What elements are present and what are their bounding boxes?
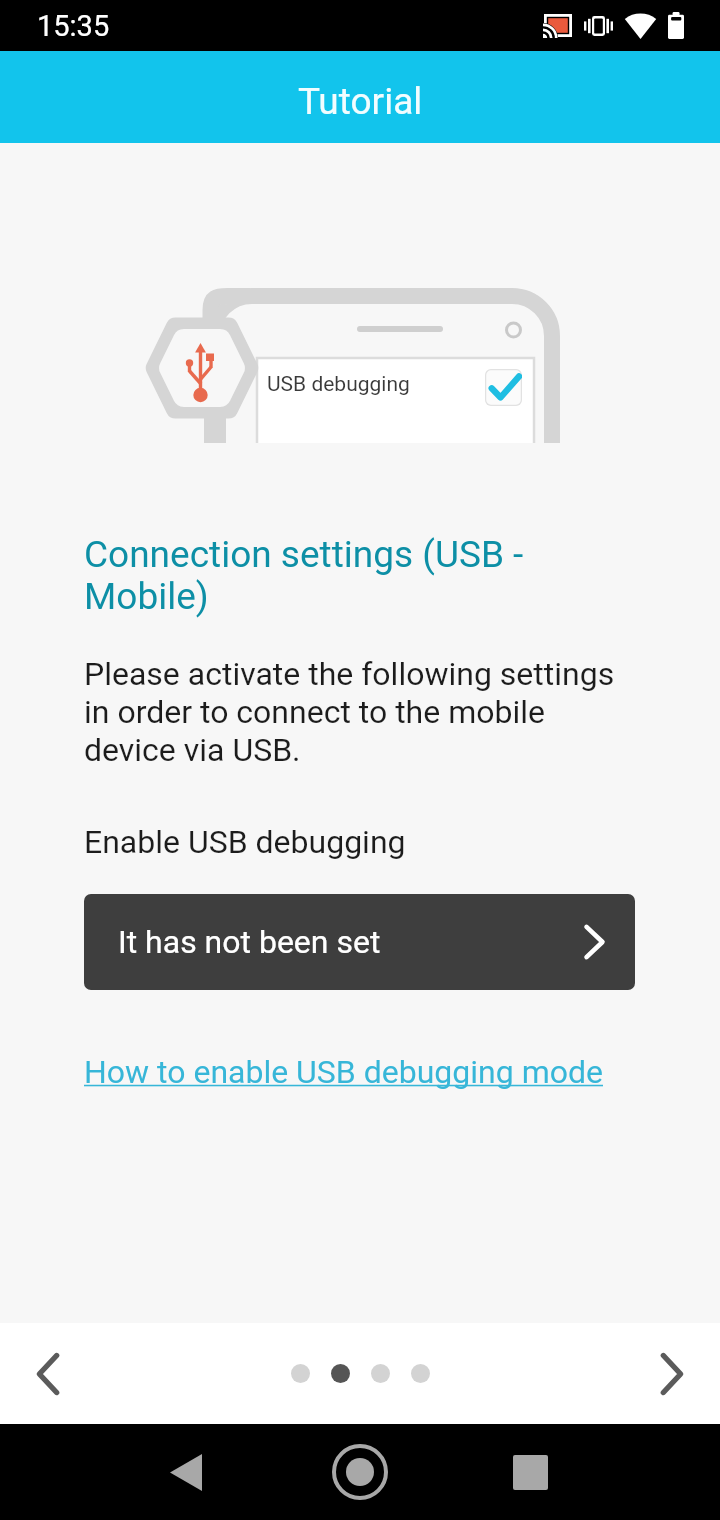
staticText: Enable USB debugging [84, 823, 406, 861]
staticText: Tutorial [298, 80, 423, 123]
button[interactable]: Recents [480, 1424, 580, 1520]
button[interactable]: Next [624, 1323, 720, 1424]
staticText: 15:35 [37, 9, 110, 43]
staticText: How to enable USB debugging mode [84, 1053, 603, 1091]
button[interactable]: How to enable USB debugging mode [84, 1053, 603, 1091]
staticText: Please activate the following settings i… [84, 655, 635, 769]
button[interactable]: Home [310, 1424, 410, 1520]
staticText: It has not been set [118, 923, 381, 961]
button[interactable]: It has not been set [84, 894, 635, 990]
button[interactable]: Back [136, 1424, 236, 1520]
button[interactable]: Previous [0, 1323, 96, 1424]
staticText: Connection settings (USB - Mobile) [84, 533, 635, 618]
staticText: USB debugging [267, 372, 410, 397]
